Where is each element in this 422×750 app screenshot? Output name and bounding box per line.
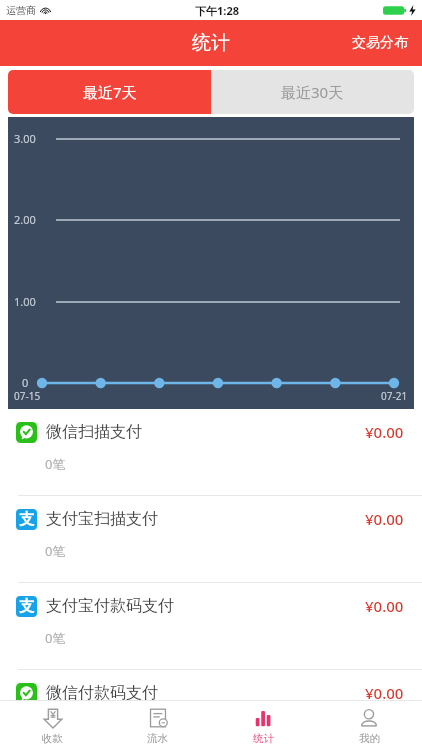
staticText: 微信付款码支付 <box>46 683 158 703</box>
staticText: ¥0.00 <box>365 509 404 529</box>
staticText: ¥0.00 <box>365 683 404 703</box>
staticText: 1.00 <box>14 294 36 309</box>
staticText: 流水 <box>147 732 168 745</box>
button[interactable]: 流水 <box>105 701 210 750</box>
staticText: 收款 <box>42 732 63 745</box>
staticText: 支 <box>19 510 34 529</box>
staticText: 07-21 <box>381 389 408 403</box>
button[interactable]: 最近30天 <box>211 70 414 114</box>
staticText: 统计 <box>192 31 230 55</box>
button[interactable]: 微信扫描支付 <box>0 409 422 495</box>
staticText: 最近7天 <box>83 82 137 102</box>
button[interactable]: 交易分布 <box>338 20 422 66</box>
staticText: 0笔 <box>45 629 66 647</box>
button[interactable]: 支 <box>0 583 422 669</box>
staticText: 支 <box>19 597 34 616</box>
staticText: 运营商 <box>6 4 36 17</box>
staticText: ¥0.00 <box>365 596 404 616</box>
staticText: 0笔 <box>45 455 66 473</box>
staticText: ¥0.00 <box>365 422 404 442</box>
staticText: 统计 <box>253 732 274 745</box>
staticText: 0笔 <box>45 542 66 560</box>
staticText: 3.00 <box>14 131 36 146</box>
staticText: 最近30天 <box>281 82 344 102</box>
button[interactable]: 统计 <box>210 701 316 750</box>
staticText: 交易分布 <box>352 34 408 52</box>
button[interactable]: 收款 <box>0 701 105 750</box>
button[interactable]: 我的 <box>316 701 422 750</box>
button[interactable]: 支 <box>0 496 422 582</box>
staticText: 07-15 <box>14 389 41 403</box>
staticText: 支付宝扫描支付 <box>46 509 158 529</box>
button[interactable]: 最近7天 <box>8 70 211 114</box>
staticText: 0 <box>22 375 29 390</box>
staticText: 微信扫描支付 <box>46 422 142 442</box>
staticText: 我的 <box>359 732 380 745</box>
staticText: 下午1:28 <box>195 3 239 18</box>
button[interactable]: 微信付款码支付 <box>0 670 422 750</box>
staticText: 0笔 <box>45 716 66 734</box>
staticText: 支付宝付款码支付 <box>46 596 174 616</box>
staticText: 2.00 <box>14 212 36 227</box>
